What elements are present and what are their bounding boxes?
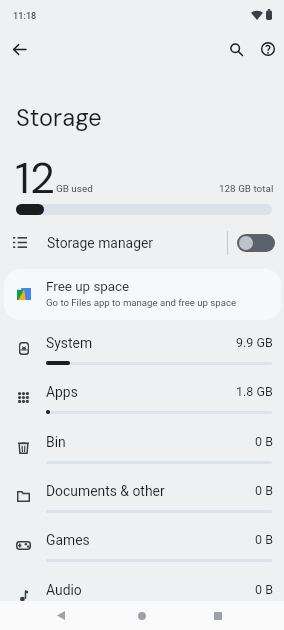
button[interactable]: Search — [218, 31, 254, 67]
staticText: 11:18 — [13, 10, 37, 21]
staticText: Games — [46, 532, 90, 548]
staticText: 0 B — [255, 532, 273, 547]
button[interactable]: Apps — [0, 378, 284, 426]
staticText: 9.9 GB — [236, 335, 273, 350]
button[interactable]: Storage manager toggle — [237, 234, 275, 252]
staticText: Storage — [16, 103, 102, 134]
button[interactable]: Storage manager — [0, 226, 284, 260]
button[interactable]: Documents & other — [0, 477, 284, 525]
button[interactable]: System — [0, 329, 284, 377]
button[interactable]: Help — [250, 31, 284, 67]
button[interactable]: Recent apps — [203, 601, 233, 630]
button[interactable]: Back — [1, 31, 37, 67]
staticText: 0 B — [255, 434, 273, 449]
button[interactable]: Bin — [0, 428, 284, 476]
staticText: Audio — [46, 582, 82, 598]
staticText: 1.8 GB — [236, 384, 273, 399]
staticText: GB used — [56, 183, 93, 195]
staticText: Documents & other — [46, 483, 165, 499]
staticText: Free up space — [46, 279, 130, 295]
staticText: 0 B — [255, 483, 273, 498]
staticText: Storage manager — [47, 235, 154, 251]
button[interactable]: Back — [46, 601, 76, 630]
staticText: 12 — [15, 150, 56, 206]
staticText: System — [46, 335, 93, 351]
button[interactable]: Free up space — [4, 269, 281, 320]
button[interactable]: Home — [127, 601, 157, 630]
staticText: 128 GB total — [219, 183, 274, 195]
staticText: Bin — [46, 434, 66, 450]
button[interactable]: Audio — [0, 576, 284, 624]
staticText: Apps — [46, 384, 78, 400]
staticText: 0 B — [255, 582, 273, 597]
staticText: Go to Files app to manage and free up sp… — [46, 297, 237, 308]
button[interactable]: Games — [0, 526, 284, 574]
